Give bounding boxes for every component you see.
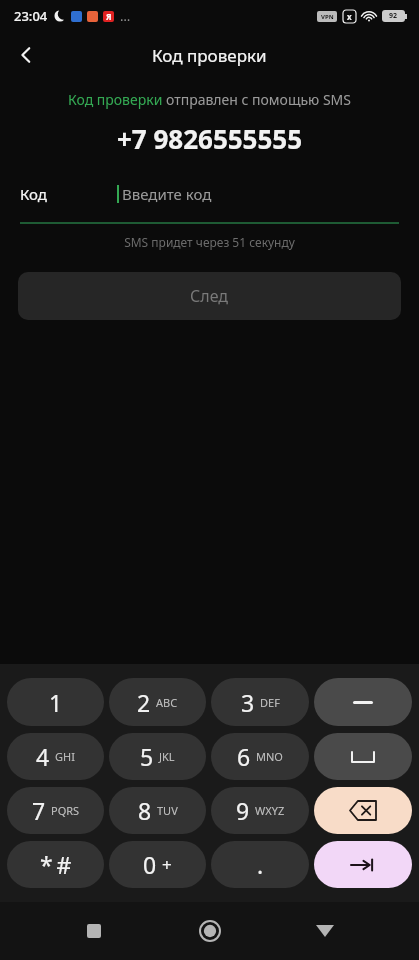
button[interactable]: Home bbox=[188, 909, 232, 953]
button[interactable]: Space bbox=[314, 733, 412, 780]
staticText: PQRS bbox=[51, 803, 80, 818]
staticText: 1 bbox=[49, 687, 63, 718]
staticText: 5 bbox=[140, 741, 154, 772]
staticText: Код проверки отправлен с помощью SMS bbox=[0, 90, 419, 109]
button[interactable]: Minus bbox=[314, 678, 412, 726]
staticText: GHI bbox=[55, 749, 75, 764]
button[interactable]: 8 bbox=[109, 787, 206, 834]
button[interactable]: 5 bbox=[109, 733, 206, 780]
staticText: 23:04 bbox=[14, 7, 48, 25]
staticText: 7 bbox=[32, 795, 46, 826]
button[interactable]: Hide keyboard bbox=[303, 909, 347, 953]
button[interactable]: 9 bbox=[211, 787, 309, 834]
staticText: Я bbox=[106, 11, 112, 22]
button[interactable]: 6 bbox=[211, 733, 309, 780]
button[interactable]: * # bbox=[7, 841, 104, 888]
button[interactable]: 3 bbox=[211, 678, 309, 726]
button[interactable]: Backspace bbox=[314, 787, 412, 834]
button[interactable]: Код bbox=[20, 184, 399, 224]
button[interactable]: 2 bbox=[109, 678, 206, 726]
button[interactable]: След bbox=[18, 272, 401, 320]
staticText: … bbox=[120, 7, 131, 25]
staticText: 3 bbox=[241, 687, 255, 718]
staticText: TUV bbox=[157, 803, 178, 818]
staticText: +7 9826555555 bbox=[0, 121, 419, 156]
staticText: JKL bbox=[159, 749, 175, 764]
button[interactable]: 7 bbox=[7, 787, 104, 834]
staticText: ABC bbox=[156, 695, 178, 710]
staticText: + bbox=[162, 853, 172, 876]
staticText: * # bbox=[40, 849, 72, 880]
staticText: 4 bbox=[36, 741, 50, 772]
staticText: 2 bbox=[137, 687, 151, 718]
staticText: DEF bbox=[260, 695, 280, 710]
button[interactable]: 0 bbox=[109, 841, 206, 888]
staticText: . bbox=[257, 849, 264, 880]
staticText: VPN bbox=[321, 13, 334, 21]
staticText: 9 bbox=[236, 795, 250, 826]
staticText: След bbox=[190, 285, 229, 307]
staticText: 0 bbox=[143, 849, 157, 880]
staticText: Код bbox=[20, 184, 47, 204]
staticText: SMS придет через 51 секунду bbox=[0, 234, 419, 250]
button[interactable]: . bbox=[211, 841, 309, 888]
button[interactable]: 1 bbox=[7, 678, 104, 726]
staticText: MNO bbox=[256, 749, 283, 764]
button[interactable]: Recents bbox=[72, 909, 116, 953]
staticText: 8 bbox=[138, 795, 152, 826]
button[interactable]: 4 bbox=[7, 733, 104, 780]
staticText: WXYZ bbox=[255, 803, 285, 818]
staticText: 92 bbox=[389, 11, 398, 21]
staticText: 6 bbox=[237, 741, 251, 772]
staticText: Код проверки bbox=[152, 44, 267, 67]
staticText: x bbox=[347, 11, 352, 22]
staticText: Введите код bbox=[122, 184, 212, 204]
button[interactable]: Enter bbox=[314, 841, 412, 888]
button[interactable]: Back bbox=[6, 35, 46, 75]
